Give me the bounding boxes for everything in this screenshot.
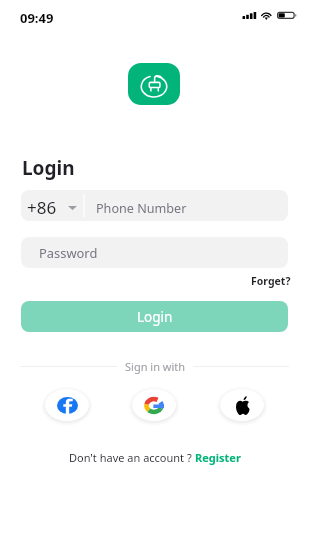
button[interactable]: Password	[21, 237, 288, 268]
staticText: Login	[22, 155, 75, 181]
button[interactable]: Login	[21, 301, 288, 332]
button[interactable]: Forget?	[247, 274, 295, 288]
button[interactable]: Sign in with Apple	[215, 384, 269, 426]
staticText: Login	[137, 308, 173, 326]
staticText: Sign in with	[125, 359, 186, 374]
staticText: +86	[27, 196, 57, 219]
button[interactable]: Sign in with Facebook	[40, 384, 94, 426]
staticText: Don't have an account ?	[69, 450, 195, 465]
staticText: Password	[39, 244, 98, 262]
button[interactable]: Sign in with Google	[127, 384, 181, 426]
button[interactable]: Register	[195, 450, 241, 465]
staticText: Phone Number	[96, 200, 187, 217]
staticText: 09:49	[20, 9, 54, 27]
button[interactable]: +86	[21, 190, 83, 221]
staticText: Forget?	[251, 274, 291, 288]
